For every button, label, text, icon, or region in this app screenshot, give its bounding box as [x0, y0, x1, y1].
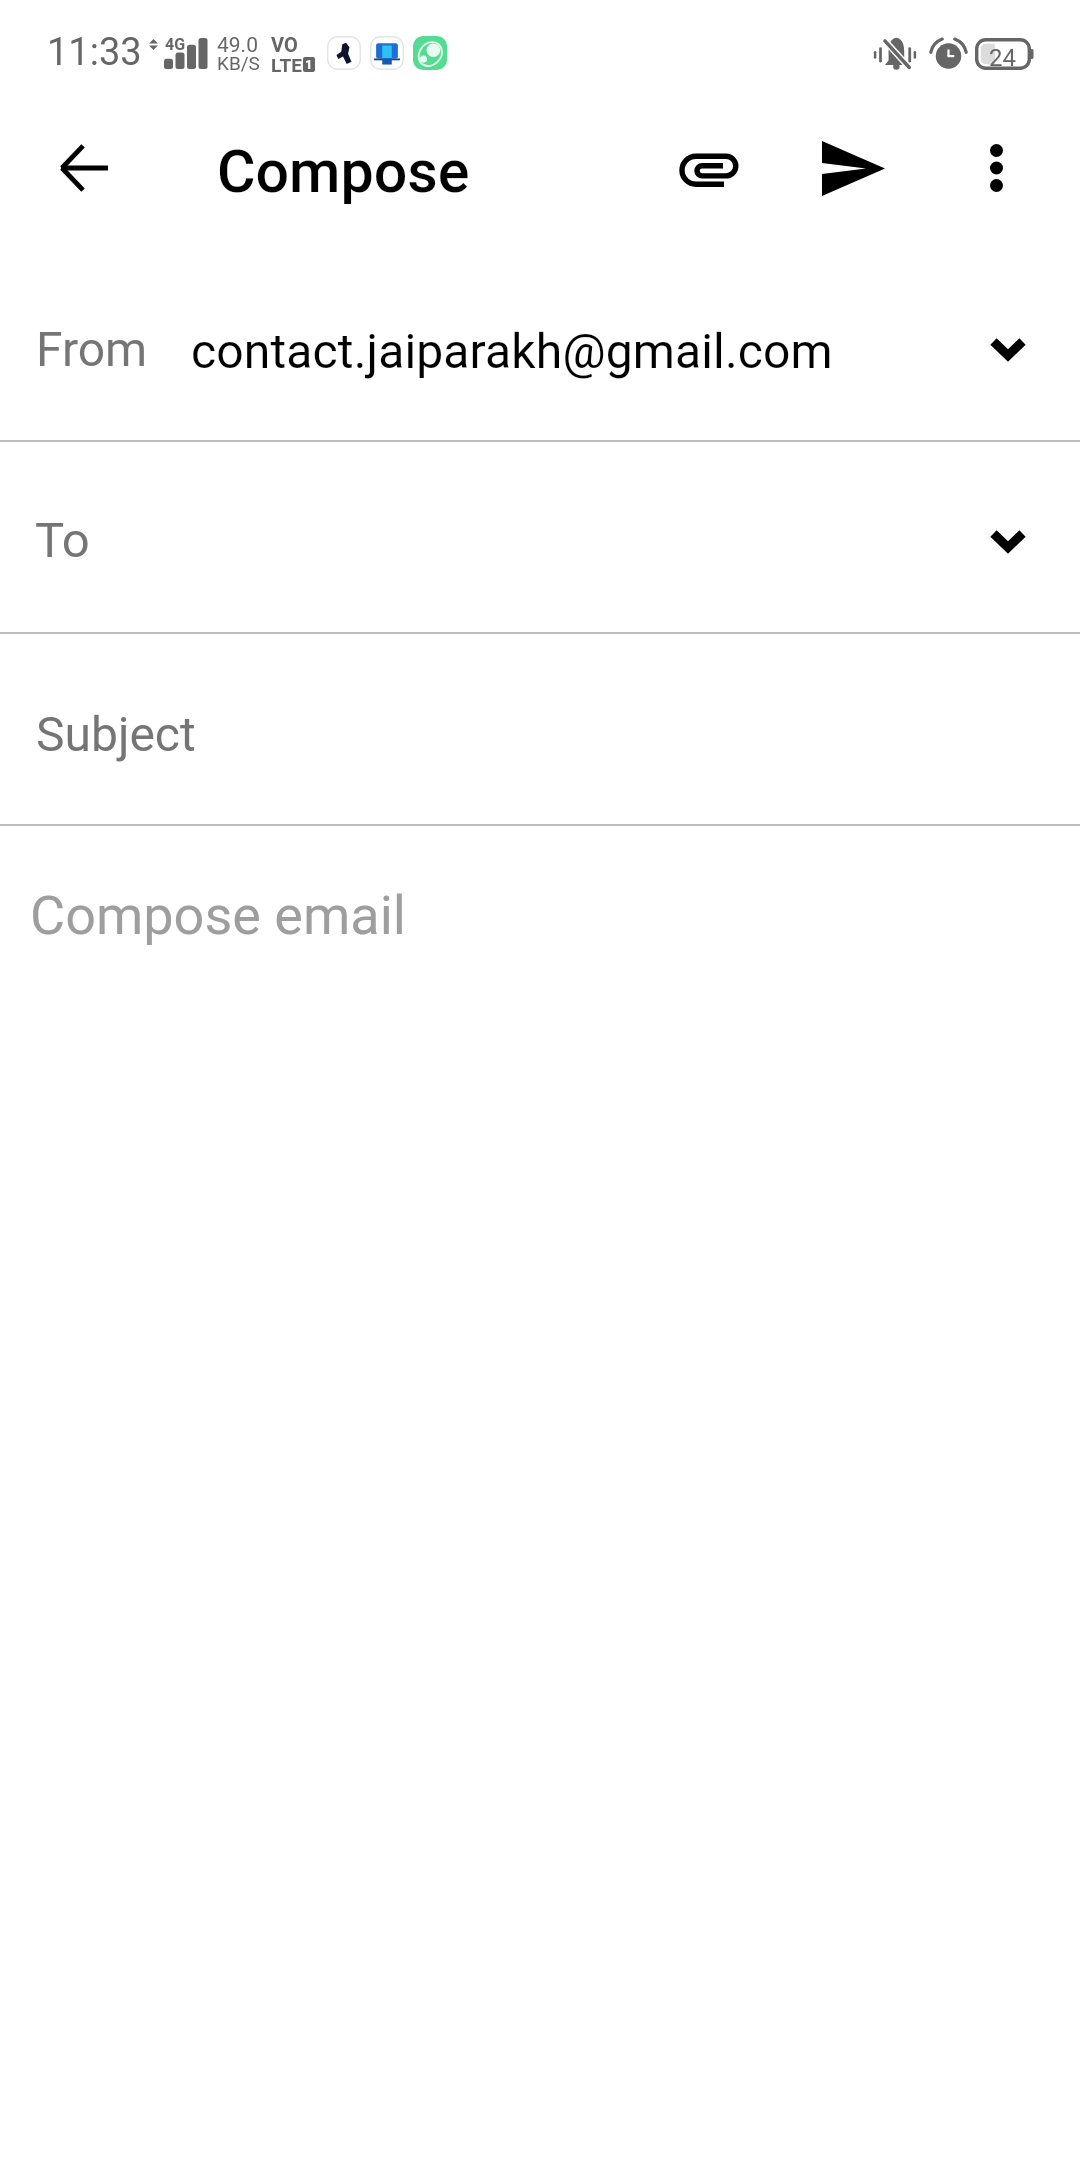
button[interactable]: Change sender account [958, 304, 1058, 392]
staticText: KB/S [217, 52, 260, 74]
staticText: 24 [989, 44, 1016, 72]
staticText: VO [271, 33, 298, 56]
staticText: LTE [271, 54, 302, 76]
staticText: contact.jaiparakh@gmail.com [191, 323, 833, 379]
button[interactable]: Navigate up [32, 116, 136, 220]
button[interactable]: From [0, 282, 1080, 440]
staticText: Compose email [30, 884, 406, 947]
button[interactable]: Show Cc and Bcc fields [958, 496, 1058, 584]
staticText: 1 [305, 57, 313, 72]
button[interactable]: To [0, 442, 1080, 632]
button[interactable]: Subject [0, 634, 1080, 824]
staticText: To [35, 512, 90, 569]
button[interactable]: Attach file [657, 119, 761, 223]
staticText: From [36, 321, 148, 377]
staticText: 11:33 [47, 30, 142, 75]
button[interactable]: Compose email [0, 826, 1080, 2160]
staticText: Subject [36, 706, 196, 762]
button[interactable]: Send [801, 116, 905, 220]
button[interactable]: More options [944, 116, 1048, 220]
staticText: 49.0 [217, 33, 258, 58]
staticText: 4G [165, 35, 186, 54]
staticText: Compose [217, 137, 470, 206]
